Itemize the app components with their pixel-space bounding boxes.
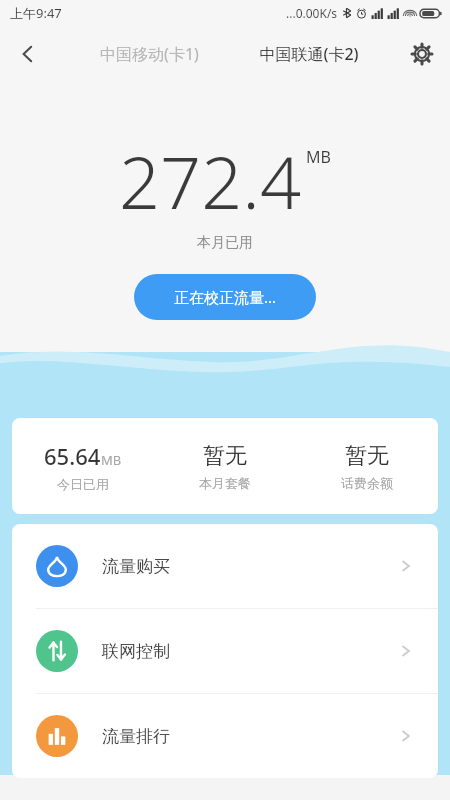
- staticText: 暂无: [203, 442, 247, 470]
- button[interactable]: 65.64: [12, 441, 154, 492]
- staticText: 65.64: [44, 441, 101, 471]
- staticText: 中国移动(卡1): [100, 43, 199, 65]
- button[interactable]: 联网控制: [12, 609, 438, 693]
- staticText: 话费余额: [341, 475, 393, 491]
- staticText: 本月套餐: [199, 475, 251, 491]
- staticText: 中国联通(卡2): [259, 43, 359, 65]
- button[interactable]: 流量购买: [12, 524, 438, 608]
- staticText: 流量购买: [102, 556, 398, 577]
- button[interactable]: 流量排行: [12, 694, 438, 778]
- staticText: 272.4: [119, 132, 302, 230]
- staticText: MB: [306, 146, 331, 168]
- staticText: 上午9:47: [10, 4, 62, 22]
- staticText: MB: [101, 451, 122, 469]
- staticText: 本月已用: [197, 234, 253, 252]
- staticText: ...0.00K/s: [286, 5, 338, 21]
- staticText: 今日已用: [57, 476, 109, 492]
- button[interactable]: Settings: [394, 26, 450, 82]
- button[interactable]: Back: [0, 26, 56, 82]
- button[interactable]: 暂无: [154, 442, 296, 491]
- staticText: 暂无: [345, 442, 389, 470]
- staticText: 正在校正流量...: [174, 287, 277, 307]
- staticText: 联网控制: [102, 641, 398, 662]
- button[interactable]: 中国联通(卡2): [229, 26, 388, 82]
- button[interactable]: 暂无: [296, 442, 438, 491]
- staticText: 流量排行: [102, 726, 398, 747]
- button[interactable]: 正在校正流量...: [134, 274, 316, 320]
- button[interactable]: 中国移动(卡1): [70, 26, 229, 82]
